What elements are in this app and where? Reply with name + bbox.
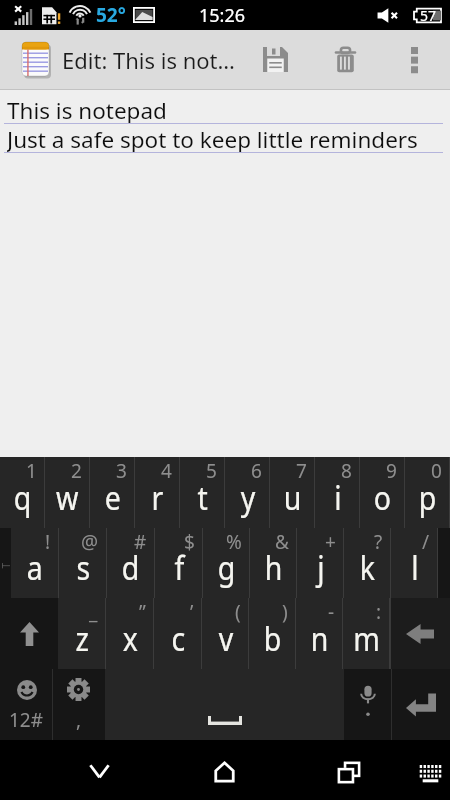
staticText: w [56,475,79,519]
button[interactable]: Enter [391,669,450,740]
button[interactable]: Settings [52,669,105,740]
button[interactable]: ) [249,598,296,669]
staticText: d [122,545,140,589]
staticText: r [151,475,163,519]
staticText: % [226,529,242,555]
staticText: i [334,475,342,519]
button[interactable]: Shift [0,598,58,669]
staticText: t [197,475,208,519]
staticText: q [14,475,32,519]
button[interactable]: Voice input [344,669,391,740]
staticText: j [317,545,325,589]
button[interactable]: Switch keyboard [411,740,450,800]
button[interactable]: 2 [45,457,90,528]
staticText: y [241,475,255,519]
button[interactable]: Emoji and symbols [0,669,52,740]
staticText: : [376,599,382,625]
staticText: n [311,616,329,660]
button[interactable]: 6 [225,457,270,528]
staticText: Edit: This is not… [62,45,235,75]
staticText: ( [235,599,241,625]
button[interactable]: ! [11,528,59,598]
staticText: 1 [26,458,37,484]
staticText: , [76,707,82,733]
staticText: p [419,475,437,519]
staticText: 9 [386,458,397,484]
staticText: Just a safe spot to keep little reminder… [7,124,418,153]
staticText: k [360,545,375,589]
staticText: ’ [190,599,194,625]
staticText: XT9 [0,557,26,568]
button[interactable]: XT9 [0,528,11,598]
staticText: b [264,616,282,660]
button[interactable]: Recent apps [287,740,411,800]
staticText: 7 [296,458,307,484]
staticText: 4 [161,458,172,484]
button[interactable]: 1 [0,457,45,528]
staticText: $ [184,529,195,555]
staticText: 57 [420,6,437,25]
button[interactable]: Backspace [390,598,450,669]
staticText: 2 [71,458,82,484]
button[interactable]: - [296,598,343,669]
staticText: _ [89,599,98,625]
staticText: & [275,529,289,555]
staticText: ) [282,599,288,625]
staticText: e [105,475,121,519]
button[interactable]: Space [105,669,344,740]
button[interactable]: % [203,528,250,598]
staticText: ” [139,599,146,625]
staticText: 6 [251,458,262,484]
button[interactable]: ” [106,598,154,669]
button[interactable]: More options [379,30,450,89]
staticText: z [76,616,89,660]
staticText: g [218,545,236,589]
staticText: u [284,475,302,519]
button[interactable]: Home [162,740,287,800]
button[interactable]: & [250,528,297,598]
button[interactable]: + [297,528,344,598]
staticText: 0 [431,458,442,484]
button[interactable]: 4 [135,457,180,528]
staticText: c [172,616,185,660]
button[interactable]: : [343,598,390,669]
button[interactable]: Save [239,30,311,89]
staticText: # [134,529,147,555]
staticText: l [411,545,419,589]
button[interactable]: ( [202,598,249,669]
staticText: a [27,545,43,589]
button[interactable]: ’ [154,598,202,669]
button[interactable]: @ [59,528,107,598]
button[interactable]: Delete [311,30,379,89]
staticText: This is notepad [7,95,167,124]
button[interactable]: # [107,528,155,598]
button[interactable]: 8 [315,457,360,528]
staticText: 5 [206,458,217,484]
button[interactable]: _ [58,598,106,669]
staticText: 52° [96,2,126,28]
staticText: + [325,529,336,555]
button[interactable]: Back [0,740,162,800]
button[interactable]: 7 [270,457,315,528]
staticText: f [174,545,184,589]
staticText: h [265,545,283,589]
staticText: m [353,616,380,660]
button[interactable]: 5 [180,457,225,528]
button[interactable]: 9 [360,457,405,528]
button[interactable]: 0 [405,457,450,528]
staticText: s [77,545,90,589]
staticText: 3 [116,458,127,484]
button[interactable]: / [391,528,438,598]
staticText: ? [374,529,383,555]
button[interactable]: $ [155,528,203,598]
staticText: 12# [9,707,44,733]
button[interactable]: 3 [90,457,135,528]
staticText: 8 [341,458,352,484]
staticText: 15:26 [199,3,246,28]
staticText: / [422,529,430,555]
staticText: ! [45,529,51,555]
button[interactable]: ? [344,528,391,598]
staticText: v [219,616,233,660]
staticText: @ [81,529,99,555]
button[interactable]: Edit: This is not… [0,30,239,89]
